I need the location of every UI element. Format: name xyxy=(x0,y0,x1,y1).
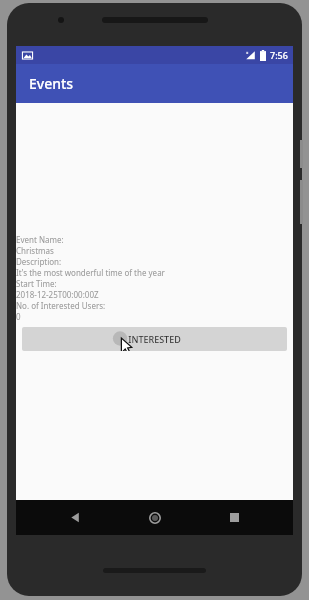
staticText: Christmas xyxy=(16,245,54,256)
button[interactable]: Back xyxy=(55,500,95,535)
staticText: Events xyxy=(29,74,74,93)
staticText: 0 xyxy=(16,311,21,322)
staticText: 7:56 xyxy=(270,49,288,61)
staticText: Description: xyxy=(16,256,62,267)
button[interactable]: Recent apps xyxy=(214,500,254,535)
staticText: It's the most wonderful time of the year xyxy=(16,267,165,278)
staticText: 2018-12-25T00:00:00Z xyxy=(16,289,99,300)
button[interactable]: INTERESTED xyxy=(22,327,287,351)
staticText: Start Time: xyxy=(16,278,57,289)
staticText: Event Name: xyxy=(16,234,64,245)
staticText: No. of Interested Users: xyxy=(16,300,106,311)
staticText: INTERESTED xyxy=(128,333,181,345)
button[interactable]: Home xyxy=(135,500,175,535)
